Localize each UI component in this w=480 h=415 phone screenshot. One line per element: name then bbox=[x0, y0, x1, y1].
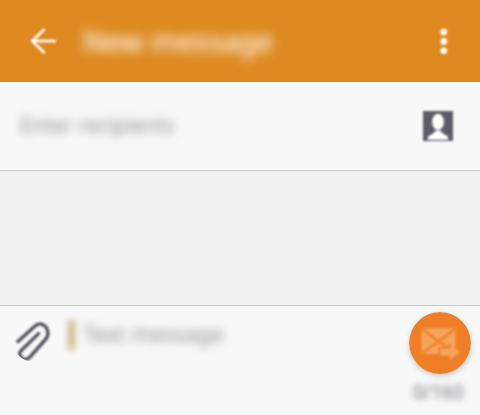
staticText: 0/160 bbox=[413, 379, 464, 405]
button[interactable]: Attach bbox=[12, 318, 56, 362]
staticText: Text message bbox=[83, 318, 224, 348]
staticText: Enter recipients bbox=[20, 111, 175, 140]
button[interactable]: Choose contact bbox=[423, 111, 453, 141]
button[interactable]: Enter recipients bbox=[0, 82, 480, 170]
staticText: New message bbox=[83, 21, 273, 60]
button[interactable]: Navigate up bbox=[20, 18, 67, 65]
button[interactable]: More options bbox=[421, 19, 466, 64]
button[interactable]: Send message bbox=[409, 312, 471, 374]
